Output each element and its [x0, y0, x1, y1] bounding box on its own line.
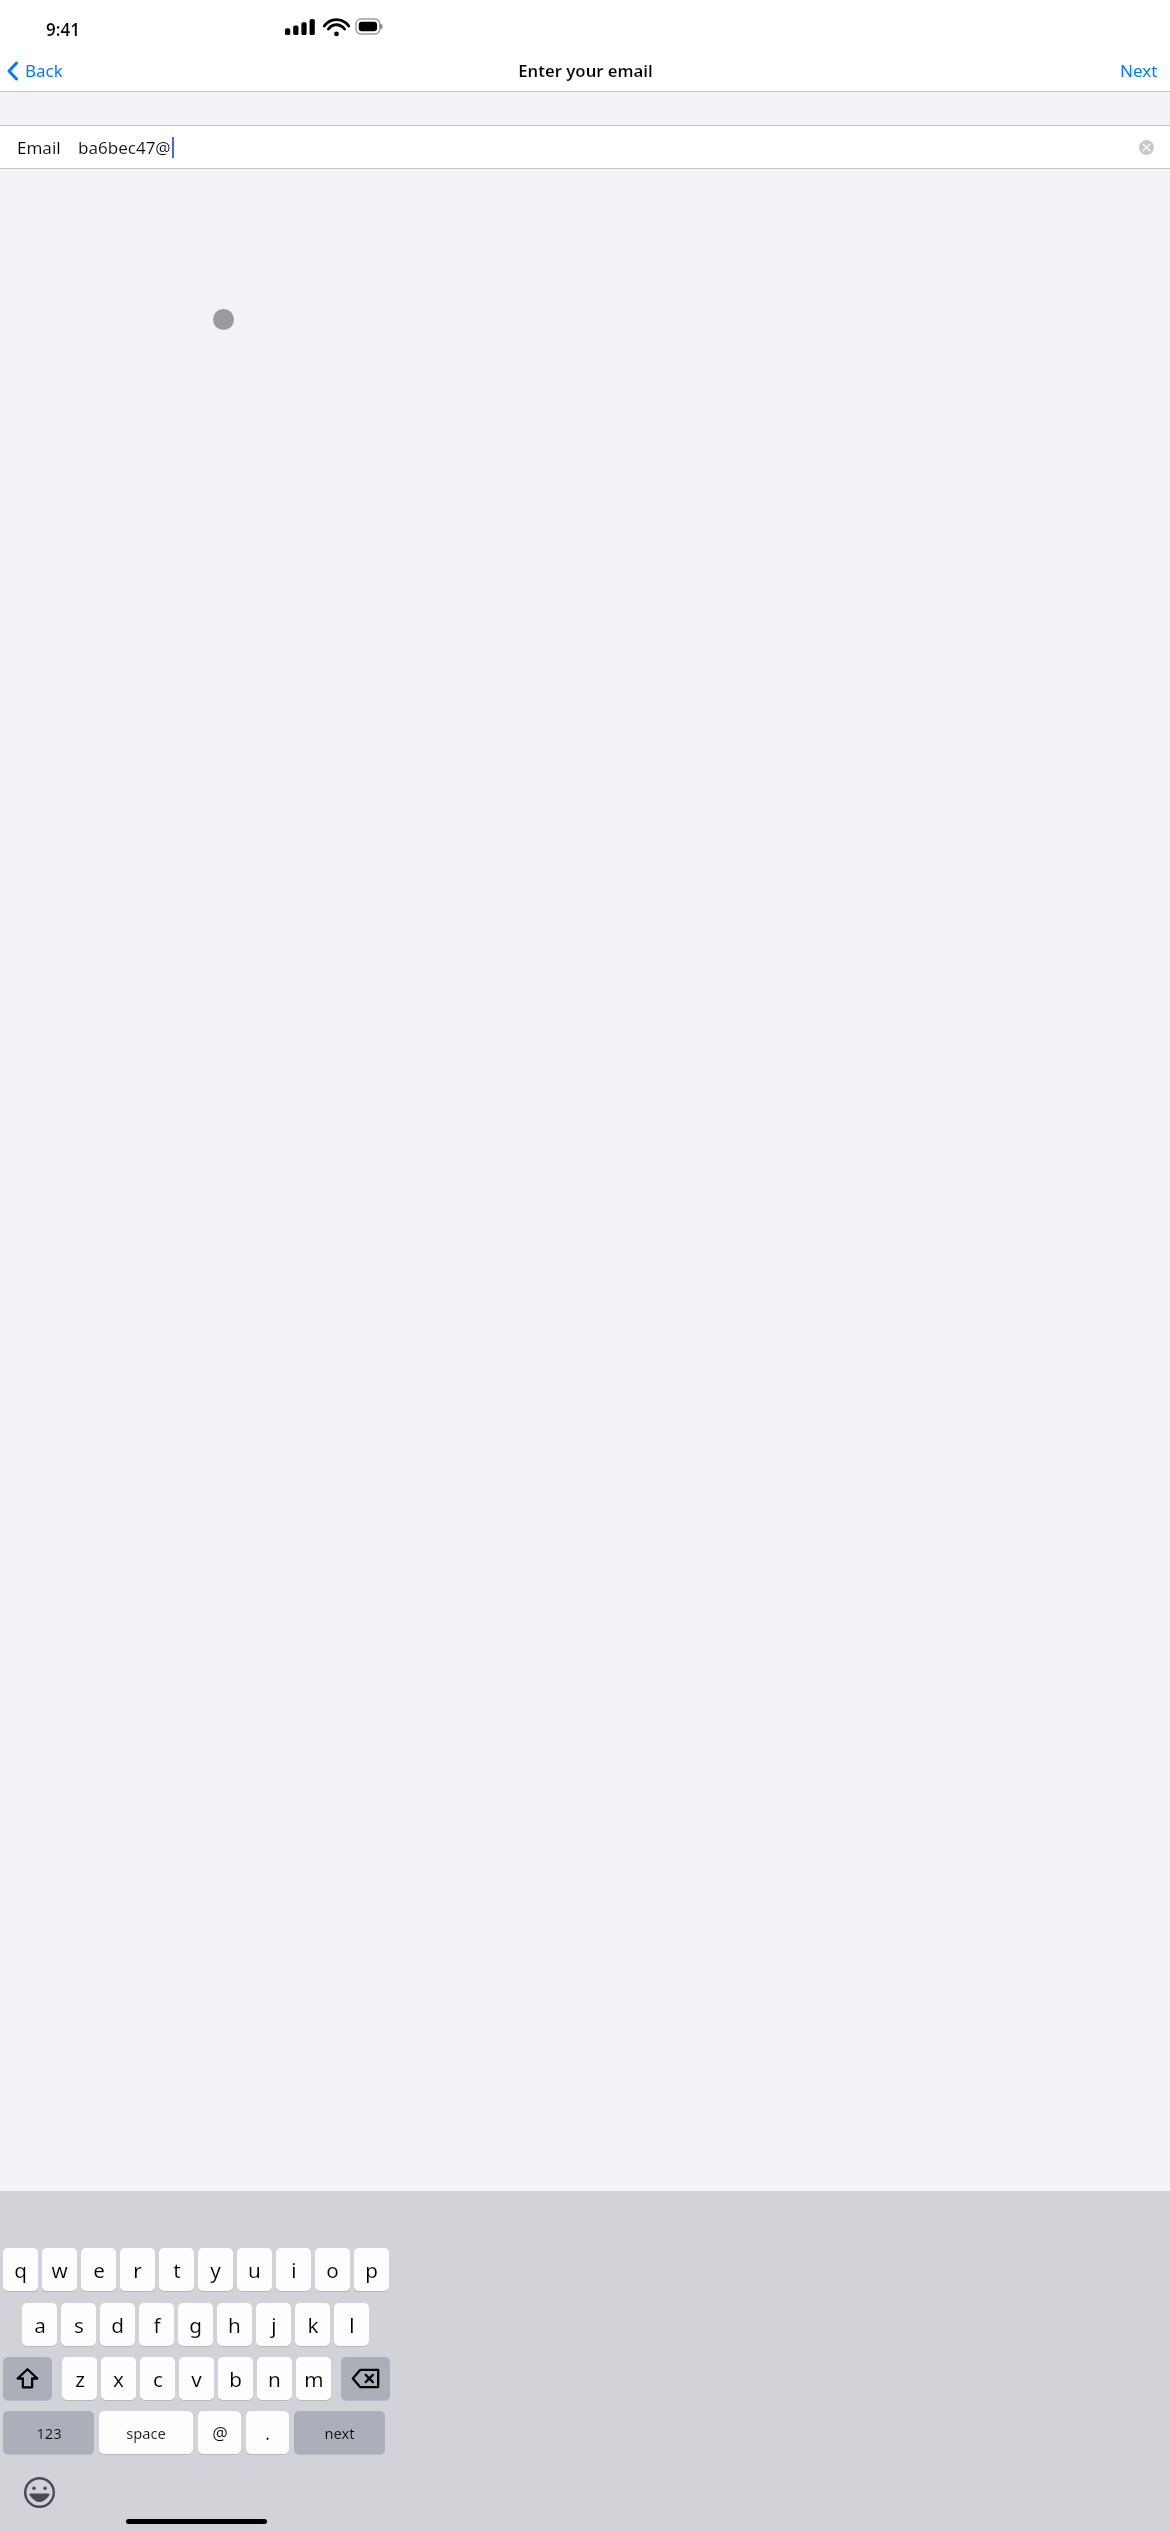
- staticText: x: [113, 2365, 124, 2393]
- staticText: @: [212, 2421, 228, 2445]
- button[interactable]: z: [62, 2357, 97, 2400]
- button[interactable]: Clear text: [1139, 140, 1154, 155]
- staticText: 9:41: [46, 18, 80, 41]
- staticText: c: [153, 2365, 163, 2393]
- staticText: s: [74, 2311, 84, 2339]
- button[interactable]: Backspace: [341, 2357, 390, 2400]
- staticText: ba6bec47@: [78, 136, 171, 159]
- staticText: z: [75, 2365, 85, 2393]
- staticText: u: [248, 2256, 261, 2284]
- button[interactable]: w: [42, 2248, 77, 2291]
- button[interactable]: Next: [1108, 50, 1170, 91]
- button[interactable]: a: [22, 2303, 57, 2346]
- button[interactable]: c: [140, 2357, 175, 2400]
- staticText: Next: [1120, 59, 1158, 82]
- staticText: p: [365, 2256, 378, 2284]
- button[interactable]: @: [198, 2411, 241, 2454]
- button[interactable]: i: [276, 2248, 311, 2291]
- button[interactable]: 123: [3, 2411, 94, 2454]
- button[interactable]: Emoji keyboard: [21, 2474, 58, 2511]
- button[interactable]: .: [246, 2411, 289, 2454]
- button[interactable]: t: [159, 2248, 194, 2291]
- staticText: g: [189, 2311, 202, 2339]
- button[interactable]: b: [218, 2357, 253, 2400]
- staticText: Email: [17, 136, 61, 159]
- staticText: k: [307, 2311, 319, 2339]
- staticText: 123: [36, 2423, 62, 2443]
- button[interactable]: o: [315, 2248, 350, 2291]
- button[interactable]: q: [3, 2248, 38, 2291]
- staticText: m: [304, 2365, 324, 2393]
- staticText: h: [228, 2311, 241, 2339]
- button[interactable]: space: [99, 2411, 193, 2454]
- button[interactable]: g: [178, 2303, 213, 2346]
- staticText: l: [349, 2311, 355, 2339]
- button[interactable]: s: [61, 2303, 96, 2346]
- button[interactable]: u: [237, 2248, 272, 2291]
- staticText: next: [324, 2423, 355, 2443]
- staticText: space: [126, 2423, 166, 2443]
- button[interactable]: r: [120, 2248, 155, 2291]
- button[interactable]: p: [354, 2248, 389, 2291]
- button[interactable]: Shift: [3, 2357, 52, 2400]
- staticText: t: [173, 2256, 181, 2284]
- staticText: w: [51, 2256, 68, 2284]
- button[interactable]: m: [296, 2357, 331, 2400]
- button[interactable]: x: [101, 2357, 136, 2400]
- staticText: b: [229, 2365, 242, 2393]
- button[interactable]: j: [256, 2303, 291, 2346]
- staticText: a: [34, 2311, 46, 2339]
- staticText: .: [265, 2421, 270, 2445]
- staticText: i: [291, 2256, 297, 2284]
- button[interactable]: n: [257, 2357, 292, 2400]
- staticText: y: [210, 2256, 221, 2284]
- button[interactable]: e: [81, 2248, 116, 2291]
- button[interactable]: l: [334, 2303, 369, 2346]
- staticText: e: [93, 2256, 105, 2284]
- button[interactable]: f: [139, 2303, 174, 2346]
- button[interactable]: y: [198, 2248, 233, 2291]
- staticText: f: [153, 2311, 161, 2339]
- staticText: j: [271, 2311, 277, 2339]
- button[interactable]: Back: [0, 50, 68, 91]
- button[interactable]: v: [179, 2357, 214, 2400]
- staticText: d: [111, 2311, 124, 2339]
- staticText: o: [326, 2256, 339, 2284]
- button[interactable]: k: [295, 2303, 330, 2346]
- staticText: r: [133, 2256, 142, 2284]
- staticText: n: [268, 2365, 281, 2393]
- button[interactable]: Email: [0, 126, 1170, 169]
- button[interactable]: d: [100, 2303, 135, 2346]
- button[interactable]: next: [294, 2411, 385, 2454]
- staticText: v: [191, 2365, 202, 2393]
- staticText: Back: [25, 59, 63, 82]
- staticText: Enter your email: [518, 59, 653, 82]
- button[interactable]: h: [217, 2303, 252, 2346]
- staticText: q: [14, 2256, 27, 2284]
